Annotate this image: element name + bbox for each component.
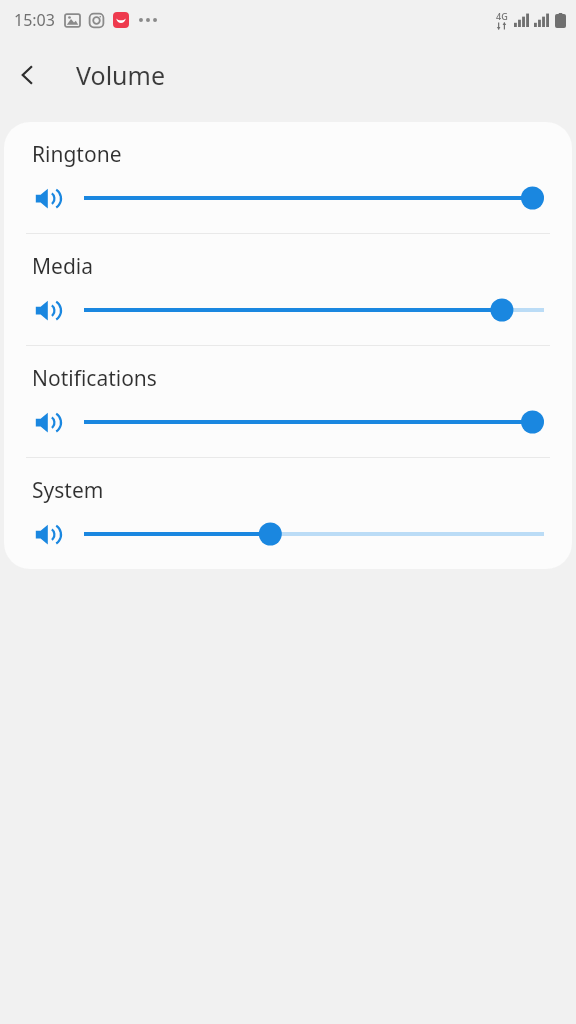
button[interactable]: Media bbox=[4, 234, 572, 345]
button[interactable]: Mute bbox=[32, 405, 66, 439]
button[interactable]: Mute bbox=[32, 181, 66, 215]
staticText: Media bbox=[32, 252, 94, 281]
button[interactable]: Notifications bbox=[4, 346, 572, 457]
staticText: Notifications bbox=[32, 364, 157, 393]
button[interactable]: Ringtone bbox=[4, 122, 572, 233]
staticText: 15:03 bbox=[14, 9, 55, 31]
staticText: Volume bbox=[76, 58, 166, 92]
button[interactable]: Volume slider bbox=[84, 181, 544, 215]
button[interactable]: Volume slider bbox=[84, 517, 544, 551]
button[interactable]: System bbox=[4, 458, 572, 569]
button[interactable]: Back bbox=[0, 47, 56, 103]
button[interactable]: Volume slider bbox=[84, 293, 544, 327]
button[interactable]: Volume slider bbox=[84, 405, 544, 439]
staticText: System bbox=[32, 476, 104, 505]
button[interactable]: Mute bbox=[32, 517, 66, 551]
staticText: 4G bbox=[496, 10, 508, 22]
button[interactable]: Mute bbox=[32, 293, 66, 327]
staticText: Ringtone bbox=[32, 140, 122, 169]
